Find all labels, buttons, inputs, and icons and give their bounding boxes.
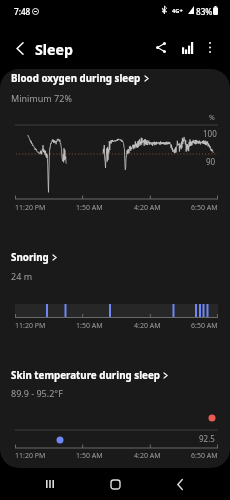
staticText: 4:20 AM [134, 451, 161, 461]
button[interactable]: Blood oxygen during sleep [11, 72, 149, 85]
staticText: 83% [196, 6, 213, 17]
button[interactable]: Sleep [35, 40, 73, 59]
staticText: 1:50 AM [76, 203, 103, 213]
staticText: 11:20 PM [15, 321, 46, 331]
staticText: Sleep [35, 40, 73, 59]
staticText: 6:50 AM [191, 451, 218, 461]
staticText: 7:48 [14, 6, 31, 17]
staticText: 6:50 AM [191, 321, 218, 331]
button[interactable]: Back [162, 468, 198, 500]
staticText: Snoring [11, 251, 49, 264]
staticText: 89.9 - 95.2°F [11, 387, 63, 399]
staticText: Minimum 72% [11, 92, 72, 104]
button[interactable]: Skin temperature during sleep [11, 369, 168, 382]
button[interactable]: Statistics [174, 34, 202, 62]
staticText: 4G+ [172, 7, 183, 15]
button[interactable]: Recents [32, 468, 68, 500]
staticText: 92.5 [199, 433, 215, 444]
staticText: 1:50 AM [76, 451, 103, 461]
staticText: 4:20 AM [134, 203, 161, 213]
button[interactable]: Back [6, 34, 34, 62]
staticText: 24 m [11, 270, 33, 282]
button[interactable]: Snoring [11, 251, 57, 264]
staticText: Skin temperature during sleep [11, 369, 160, 382]
button[interactable]: Home [97, 468, 133, 500]
button[interactable]: Share [147, 33, 175, 61]
staticText: Blood oxygen during sleep [11, 72, 141, 85]
staticText: 4:20 AM [134, 321, 161, 331]
staticText: 1:50 AM [76, 321, 103, 331]
staticText: 11:20 PM [15, 451, 46, 461]
staticText: 90 [206, 156, 216, 167]
staticText: 100 [203, 128, 217, 139]
staticText: 6:50 AM [191, 203, 218, 213]
staticText: % [209, 113, 215, 123]
staticText: 11:20 PM [15, 203, 46, 213]
button[interactable]: More options [196, 33, 224, 61]
